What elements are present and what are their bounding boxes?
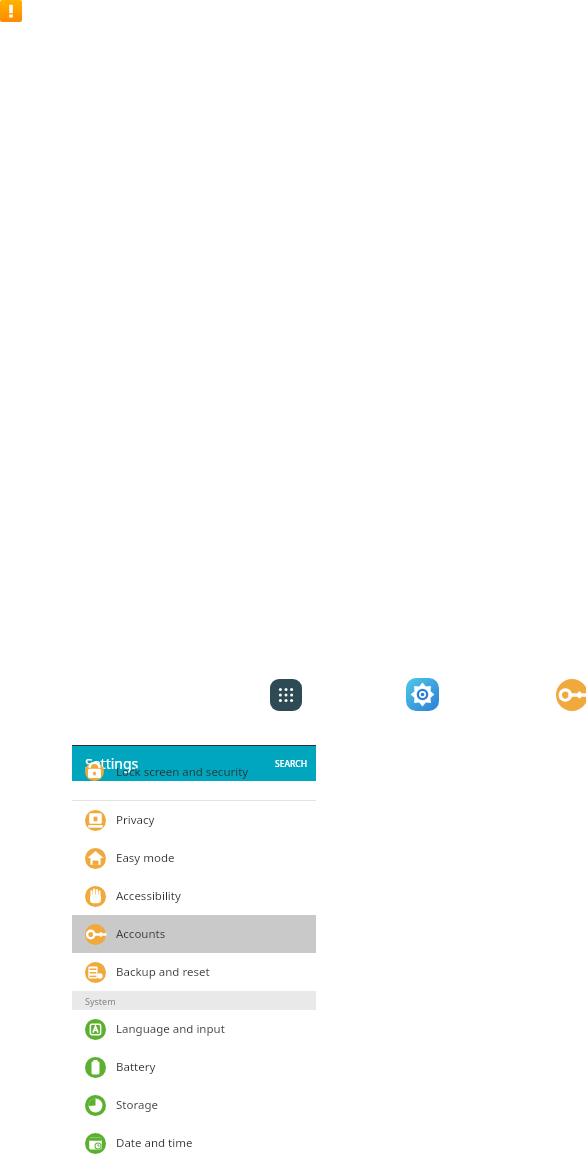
button[interactable]: Accounts: [72, 915, 316, 953]
button[interactable]: Accounts: [556, 679, 586, 711]
staticText: SEARCH: [275, 758, 308, 770]
button[interactable]: Accessibility: [72, 877, 316, 915]
button[interactable]: Battery: [72, 1048, 316, 1086]
button[interactable]: Privacy: [72, 801, 316, 839]
staticText: Storage: [116, 1097, 158, 1113]
button[interactable]: SEARCH: [267, 752, 316, 776]
staticText: Accessibility: [116, 888, 181, 904]
staticText: System: [85, 995, 116, 1007]
staticText: Date and time: [116, 1135, 193, 1151]
staticText: Language and input: [116, 1021, 225, 1037]
staticText: Backup and reset: [116, 964, 210, 980]
staticText: Battery: [116, 1059, 156, 1075]
button[interactable]: Apps: [270, 679, 302, 711]
staticText: Accounts: [116, 926, 166, 942]
staticText: Privacy: [116, 812, 155, 828]
button[interactable]: Storage: [72, 1086, 316, 1124]
button[interactable]: Language and input: [72, 1010, 316, 1048]
button[interactable]: Easy mode: [72, 839, 316, 877]
staticText: Settings: [85, 754, 139, 773]
button[interactable]: Backup and reset: [72, 953, 316, 991]
button[interactable]: Date and time: [72, 1124, 316, 1162]
staticText: Lock screen and security: [116, 764, 249, 780]
button[interactable]: Settings: [406, 678, 439, 711]
staticText: Easy mode: [116, 850, 175, 866]
button[interactable]: Warning: [0, 0, 22, 22]
